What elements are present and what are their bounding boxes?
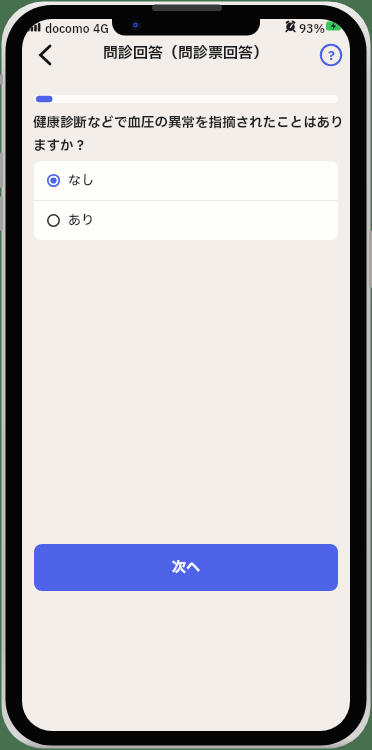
staticText: 4G bbox=[93, 21, 109, 38]
staticText: 問診回答（問診票回答） bbox=[103, 42, 269, 64]
staticText: 健康診断などで血圧の異常を指摘されたことはあり ますか？ bbox=[33, 113, 344, 156]
staticText: あり bbox=[68, 211, 95, 230]
staticText: ? bbox=[328, 46, 335, 65]
button[interactable] bbox=[30, 39, 60, 71]
staticText: 次へ bbox=[172, 557, 200, 578]
staticText: 93% bbox=[299, 21, 326, 38]
button[interactable]: 次へ bbox=[34, 544, 338, 591]
staticText: なし bbox=[68, 171, 95, 190]
button[interactable]: なし bbox=[34, 161, 338, 200]
button[interactable]: ? bbox=[317, 41, 345, 69]
button[interactable]: あり bbox=[34, 201, 338, 240]
staticText: docomo bbox=[45, 21, 90, 38]
